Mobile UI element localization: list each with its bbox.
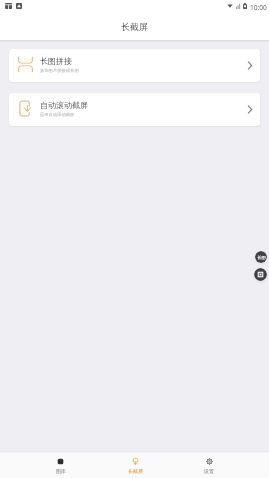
staticText: 自动滚动截屏: [40, 100, 88, 110]
staticText: 图库: [56, 468, 66, 474]
staticText: 设置: [204, 468, 214, 474]
button[interactable]: 长截屏: [98, 451, 172, 478]
button[interactable]: 图库: [23, 451, 98, 478]
staticText: 多张图片拼接成长图: [40, 68, 79, 73]
staticText: 10:00: [250, 3, 267, 12]
button[interactable]: 自动滚动截屏: [9, 93, 260, 126]
staticText: 长截屏: [128, 468, 143, 474]
staticText: 长图: [257, 255, 266, 260]
staticText: 应用自动滚动截屏: [40, 112, 75, 117]
button[interactable]: 设置: [172, 451, 246, 478]
button[interactable]: 长图拼接: [9, 49, 260, 82]
staticText: 长截屏: [121, 21, 148, 32]
button[interactable]: 区域截屏: [254, 268, 267, 281]
staticText: 长图拼接: [40, 56, 72, 66]
button[interactable]: 截长图: [255, 251, 267, 263]
